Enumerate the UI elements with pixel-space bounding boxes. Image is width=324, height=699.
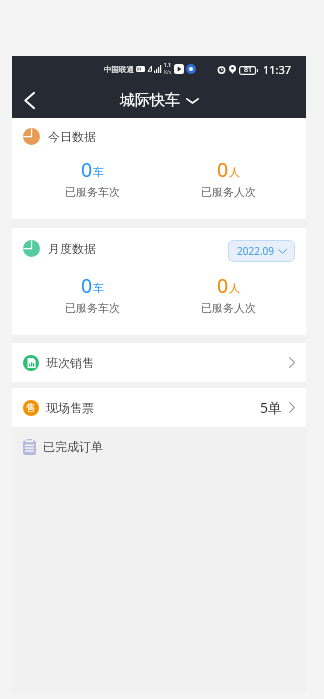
staticText: 售 [26,402,36,414]
staticText: 2022.09 [237,244,274,258]
staticText: 81 [244,65,253,75]
staticText: 0 [81,156,93,183]
button[interactable]: 城际快车 [120,91,199,110]
staticText: 已完成订单 [43,439,103,454]
staticText: 11:37 [263,62,292,77]
staticText: 班次销售 [46,355,94,370]
button[interactable]: 0 [160,156,296,199]
button[interactable]: 班次销售 [12,343,306,382]
button[interactable]: 2022.09 [228,240,295,262]
button[interactable]: 售 [12,388,306,427]
button[interactable]: 0 [25,156,160,199]
button[interactable]: 已完成订单 [12,427,306,466]
staticText: K/s [164,69,172,76]
staticText: 已服务人次 [201,185,256,199]
staticText: 车 [93,281,104,295]
staticText: 0 [217,156,229,183]
button[interactable]: 0 [25,272,160,315]
staticText: 现场售票 [46,400,94,415]
staticText: 已服务人次 [201,301,256,315]
staticText: 已服务车次 [65,185,120,199]
staticText: 1.1 [164,62,172,69]
staticText: 0 [81,272,93,299]
staticText: 城际快车 [120,91,180,110]
staticText: 今日数据 [48,129,96,144]
staticText: 车 [93,165,104,179]
button[interactable]: 0 [160,272,296,315]
staticText: 月度数据 [48,241,96,256]
staticText: 已服务车次 [65,301,120,315]
staticText: 人 [229,281,240,295]
staticText: 0 [217,272,229,299]
staticText: 中国联通 [104,65,134,74]
staticText: 5单 [260,398,283,417]
button[interactable]: Back [12,82,46,118]
staticText: 人 [229,165,240,179]
